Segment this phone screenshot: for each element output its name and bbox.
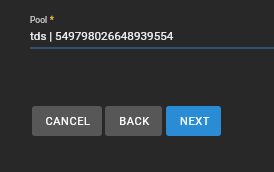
staticText: tds | 549798026648939554 [30,29,174,43]
staticText: Pool [30,15,48,25]
button[interactable]: Pool, tds | 549798026648939554 [30,8,274,49]
button[interactable]: NEXT [166,106,221,136]
staticText: CANCEL [45,115,91,128]
staticText: NEXT [180,115,210,128]
staticText: BACK [119,115,150,128]
button[interactable]: BACK [105,106,162,136]
staticText: * [50,15,54,25]
button[interactable]: CANCEL [32,106,102,136]
